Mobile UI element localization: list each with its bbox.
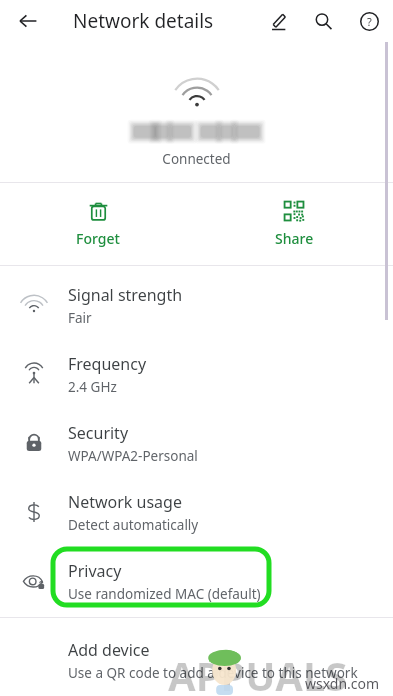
staticText: WPA/WPA2-Personal: [68, 447, 198, 465]
button[interactable]: Edit: [264, 7, 292, 35]
staticText: Fair: [68, 309, 92, 327]
staticText: Share: [275, 229, 314, 248]
staticText: Network usage: [68, 491, 182, 513]
staticText: Network details: [73, 8, 214, 34]
staticText: Add device: [68, 639, 150, 661]
button[interactable]: Signal strength: [0, 272, 393, 338]
button[interactable]: Forget: [0, 183, 196, 265]
staticText: Privacy: [68, 560, 122, 582]
staticText: ?: [367, 14, 372, 29]
staticText: Use randomized MAC (default): [68, 585, 261, 603]
staticText: wsxdn.com: [305, 674, 380, 693]
staticText: APPUALS: [168, 648, 348, 696]
staticText: Signal strength: [68, 284, 183, 306]
button[interactable]: Back: [14, 7, 42, 35]
staticText: Use a QR code to add a device to this ne…: [68, 664, 358, 682]
staticText: Forget: [76, 229, 120, 248]
button[interactable]: Security: [0, 410, 393, 476]
staticText: Connected: [0, 150, 393, 168]
staticText: 2.4 GHz: [68, 378, 117, 396]
button[interactable]: Add device: [0, 627, 393, 693]
button[interactable]: Frequency: [0, 341, 393, 407]
staticText: Security: [68, 422, 129, 444]
button[interactable]: Search: [309, 7, 337, 35]
button[interactable]: Network usage: [0, 479, 393, 545]
staticText: Frequency: [68, 353, 147, 375]
button[interactable]: Help: [355, 7, 383, 35]
button[interactable]: Privacy: [0, 548, 393, 614]
button[interactable]: Share: [196, 183, 393, 265]
staticText: Detect automatically: [68, 516, 199, 534]
